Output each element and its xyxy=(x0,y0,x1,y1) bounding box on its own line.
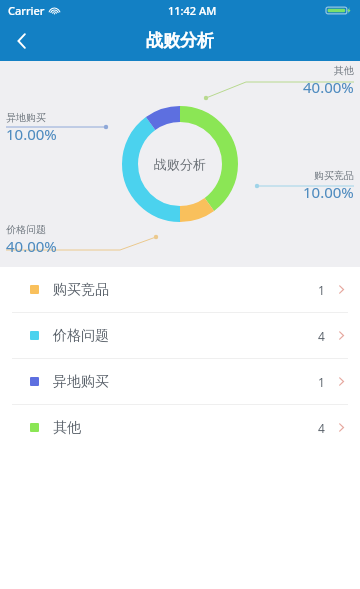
staticText: 购买竞品 xyxy=(314,169,354,182)
staticText: Carrier xyxy=(8,3,45,18)
staticText: 40.00% xyxy=(6,236,57,256)
staticText: 其他 xyxy=(334,64,354,77)
staticText: 4 xyxy=(318,420,325,436)
staticText: 战败分析 xyxy=(154,156,206,172)
staticText: 价格问题 xyxy=(53,327,109,345)
button[interactable]: 价格问题 xyxy=(0,313,360,358)
staticText: 4 xyxy=(318,328,325,344)
staticText: 11:42 AM xyxy=(168,3,217,18)
staticText: 40.00% xyxy=(303,77,354,97)
staticText: 10.00% xyxy=(6,124,57,144)
button[interactable]: 异地购买 xyxy=(0,359,360,404)
staticText: 战败分析 xyxy=(146,30,214,51)
staticText: 其他 xyxy=(53,419,81,437)
button[interactable]: 购买竞品 xyxy=(0,267,360,312)
staticText: 1 xyxy=(318,374,325,390)
staticText: 1 xyxy=(318,282,325,298)
staticText: 异地购买 xyxy=(6,111,46,124)
staticText: 价格问题 xyxy=(6,223,46,236)
staticText: 购买竞品 xyxy=(53,281,109,299)
button[interactable]: Back xyxy=(0,20,44,61)
staticText: 异地购买 xyxy=(53,373,109,391)
staticText: 10.00% xyxy=(303,182,354,202)
button[interactable]: 其他 xyxy=(0,405,360,450)
